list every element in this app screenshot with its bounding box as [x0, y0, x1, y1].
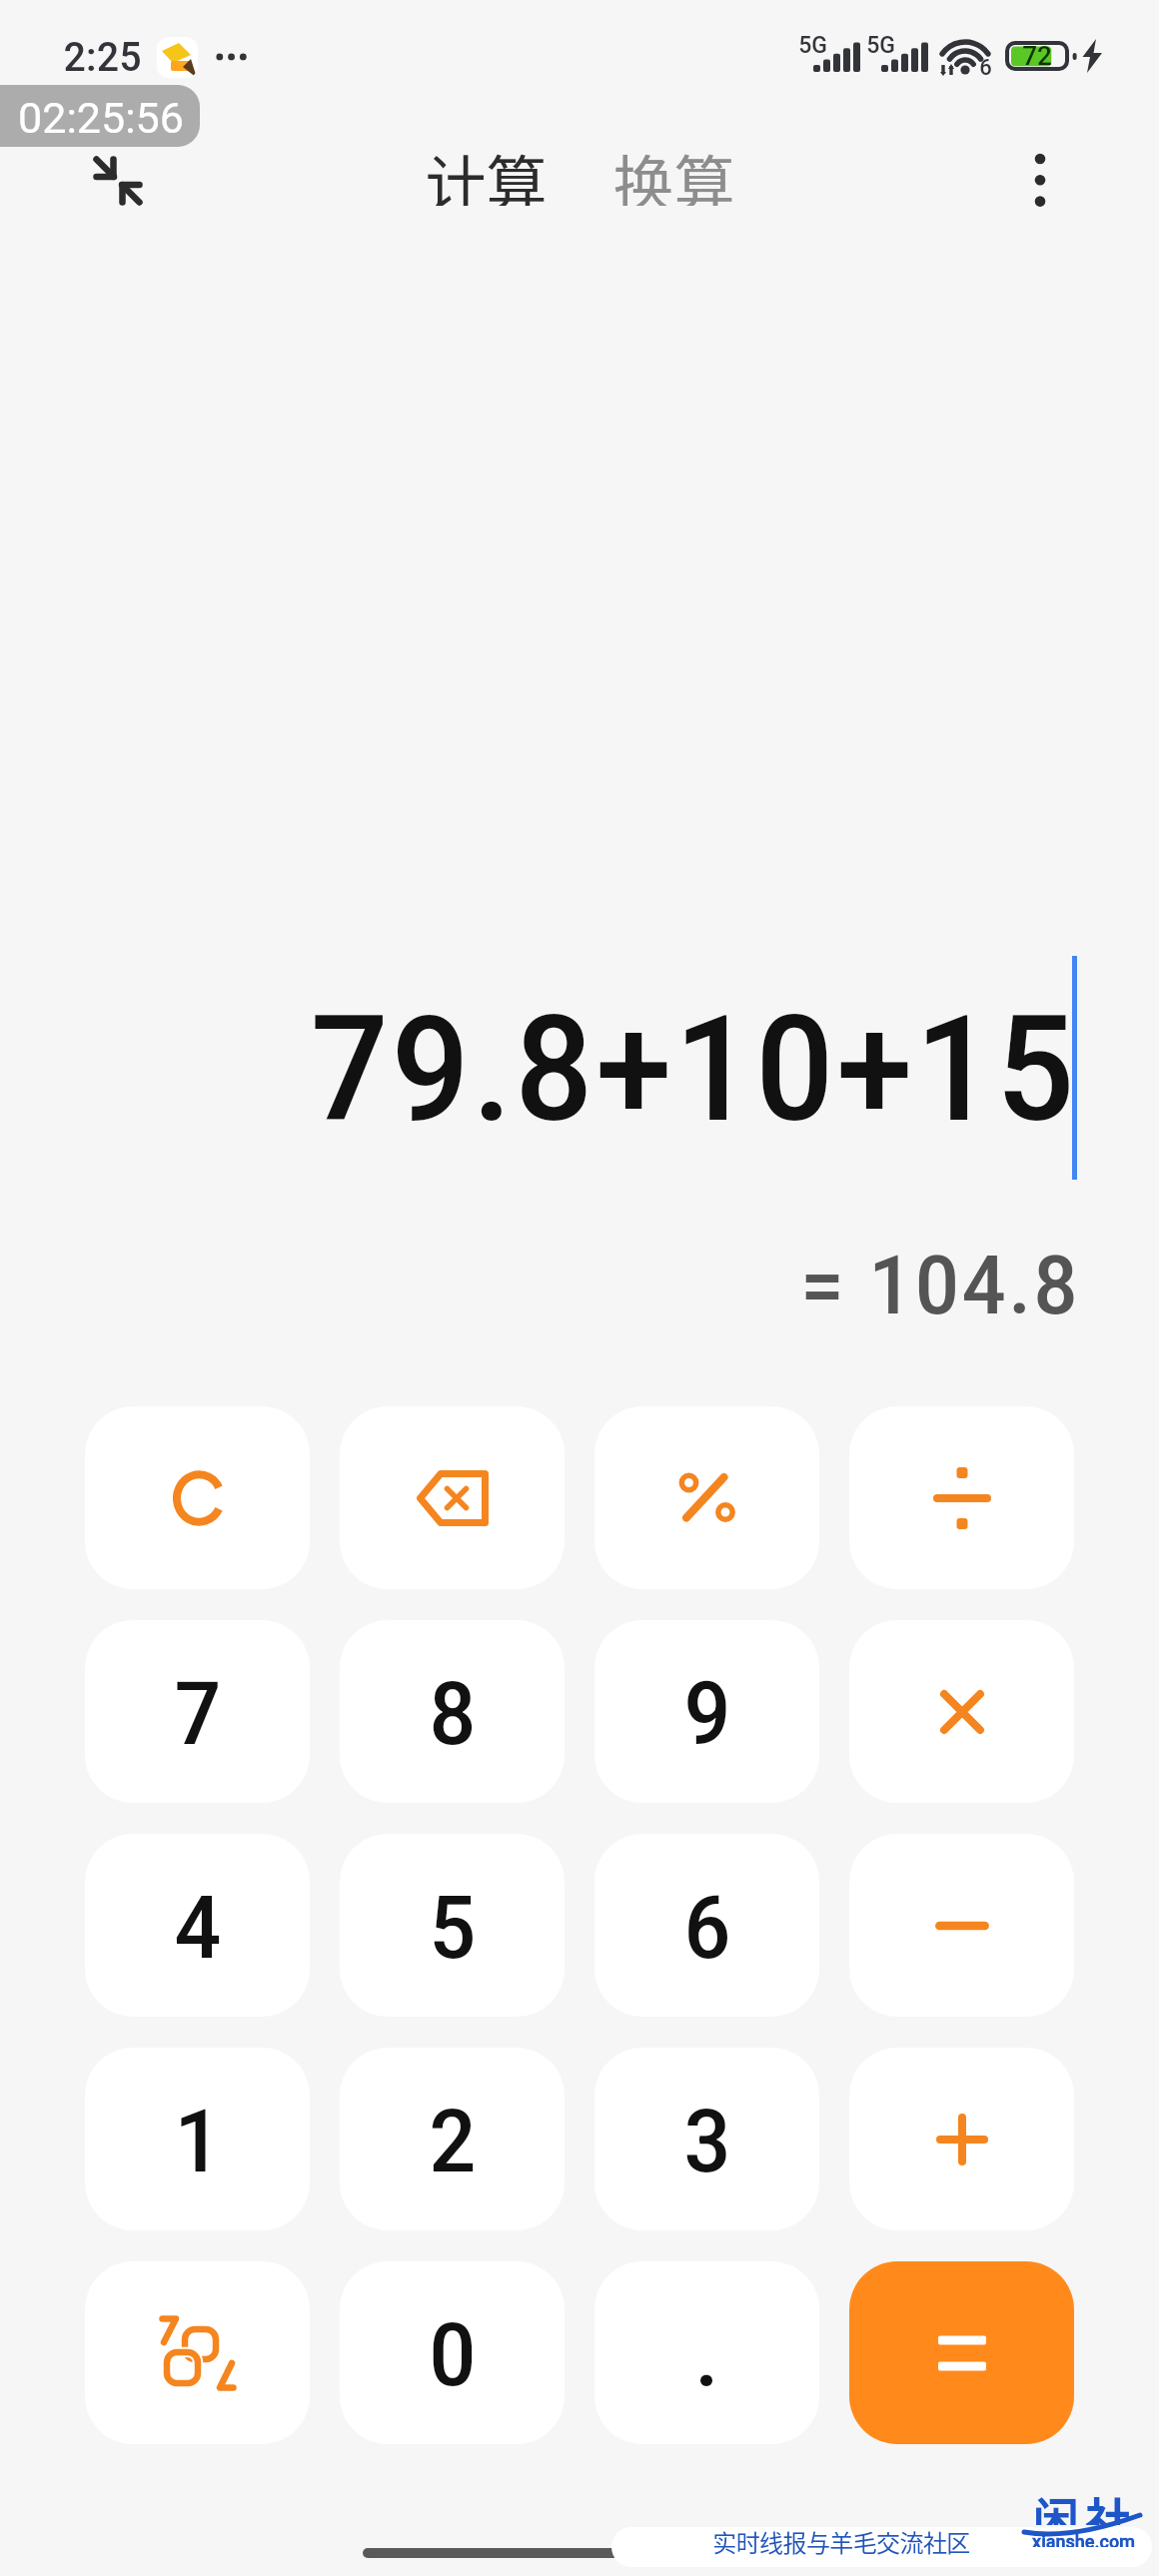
- button[interactable]: More options: [990, 131, 1090, 231]
- button[interactable]: Minus: [849, 1834, 1074, 2017]
- staticText: 换算: [612, 136, 735, 206]
- button[interactable]: Exit full screen: [68, 131, 168, 231]
- button[interactable]: Multiply: [849, 1620, 1074, 1803]
- staticText: 72: [1022, 41, 1052, 71]
- button[interactable]: 4: [85, 1834, 310, 2017]
- staticText: 5G: [866, 32, 895, 56]
- staticText: 5G: [798, 32, 827, 56]
- staticText: 5: [429, 1877, 477, 1980]
- staticText: 6: [683, 1877, 731, 1980]
- button[interactable]: Unit convert: [85, 2261, 310, 2444]
- button[interactable]: 0: [340, 2261, 565, 2444]
- button[interactable]: 3: [594, 2048, 819, 2230]
- button[interactable]: 1: [85, 2048, 310, 2230]
- staticText: 79.8+10+15: [310, 985, 1077, 1137]
- staticText: 7: [174, 1663, 222, 1766]
- button[interactable]: Divide: [849, 1406, 1074, 1589]
- staticText: 1: [174, 2091, 222, 2193]
- staticText: = 104.8: [800, 1238, 1080, 1319]
- button[interactable]: 5: [340, 1834, 565, 2017]
- staticText: 3: [683, 2091, 731, 2193]
- staticText: 实时线报与羊毛交流社区: [712, 2524, 970, 2558]
- staticText: .: [694, 2304, 719, 2407]
- staticText: xianshe.com: [1032, 2531, 1135, 2547]
- staticText: 2:25: [63, 32, 142, 76]
- button[interactable]: 计算: [416, 136, 556, 206]
- button[interactable]: 7: [85, 1620, 310, 1803]
- button[interactable]: Equals: [849, 2261, 1074, 2444]
- staticText: 6: [979, 55, 992, 81]
- staticText: 0: [429, 2304, 477, 2407]
- staticText: 9: [683, 1663, 731, 1766]
- button[interactable]: 换算: [603, 136, 743, 206]
- button[interactable]: .: [594, 2261, 819, 2444]
- button[interactable]: 9: [594, 1620, 819, 1803]
- button[interactable]: 2: [340, 2048, 565, 2230]
- button[interactable]: Clear: [85, 1406, 310, 1589]
- staticText: 闲社: [1030, 2483, 1134, 2525]
- staticText: 02:25:56: [18, 93, 184, 143]
- button[interactable]: Plus: [849, 2048, 1074, 2230]
- button[interactable]: 8: [340, 1620, 565, 1803]
- staticText: 4: [174, 1877, 222, 1980]
- staticText: 2: [429, 2091, 477, 2193]
- button[interactable]: Percent: [594, 1406, 819, 1589]
- button[interactable]: Backspace: [340, 1406, 565, 1589]
- staticText: 计算: [425, 136, 548, 206]
- button[interactable]: 6: [594, 1834, 819, 2017]
- staticText: 8: [429, 1663, 477, 1766]
